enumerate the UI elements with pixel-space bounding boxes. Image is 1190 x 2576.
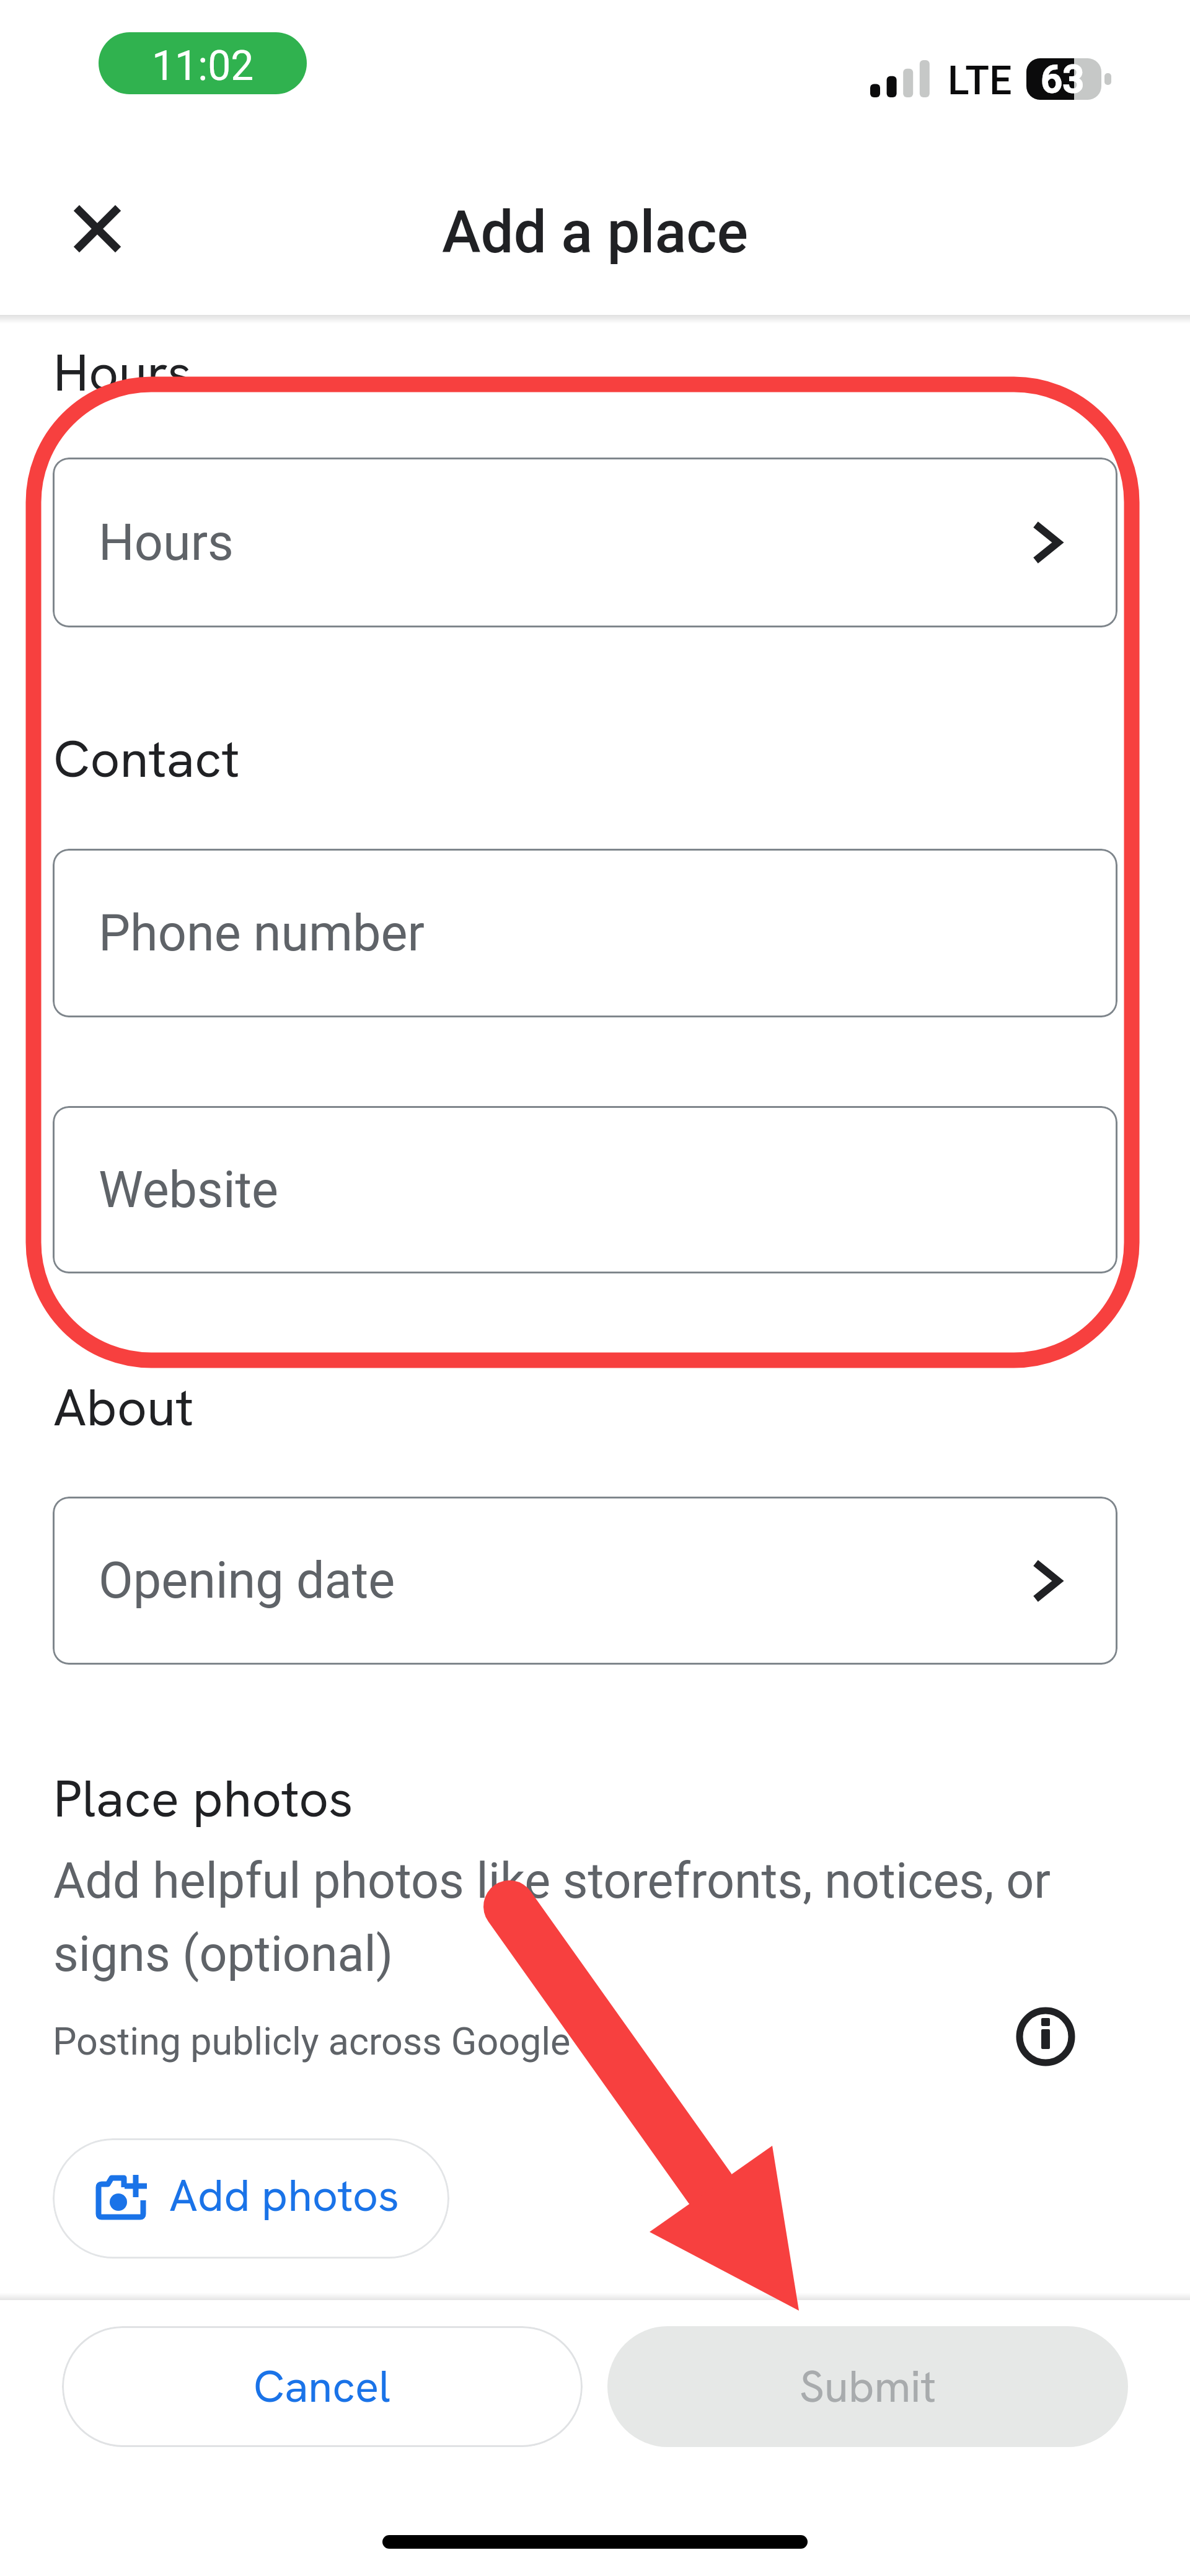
button[interactable]: Cancel xyxy=(62,2326,583,2447)
staticText: Contact xyxy=(53,725,240,792)
staticText: Add photos xyxy=(169,2166,400,2224)
staticText: Opening date xyxy=(99,1551,395,1610)
button[interactable]: Add photos xyxy=(53,2138,449,2259)
button[interactable]: More information xyxy=(1012,2003,1079,2070)
button[interactable]: Phone number xyxy=(53,849,1117,1017)
staticText: Posting publicly across Google xyxy=(53,2019,571,2063)
staticText: Phone number xyxy=(99,904,425,963)
button[interactable]: Website xyxy=(53,1106,1117,1273)
staticText: Place photos xyxy=(53,1764,353,1832)
staticText: 63 xyxy=(1041,56,1085,98)
staticText: Hours xyxy=(99,513,234,572)
staticText: Website xyxy=(99,1161,279,1219)
staticText: Hours xyxy=(53,339,192,406)
button[interactable]: Submit xyxy=(607,2326,1128,2447)
staticText: LTE xyxy=(948,58,1012,104)
staticText: Submit xyxy=(800,2358,936,2415)
staticText: 11:02 xyxy=(152,42,254,90)
staticText: Cancel xyxy=(253,2358,391,2415)
button[interactable]: Hours xyxy=(53,458,1117,627)
staticText: Add helpful photos like storefronts, not… xyxy=(53,1852,1082,1983)
button[interactable]: Close xyxy=(60,192,134,266)
staticText: Add a place xyxy=(442,198,749,267)
button[interactable]: Opening date xyxy=(53,1497,1117,1665)
staticText: About xyxy=(53,1373,194,1441)
